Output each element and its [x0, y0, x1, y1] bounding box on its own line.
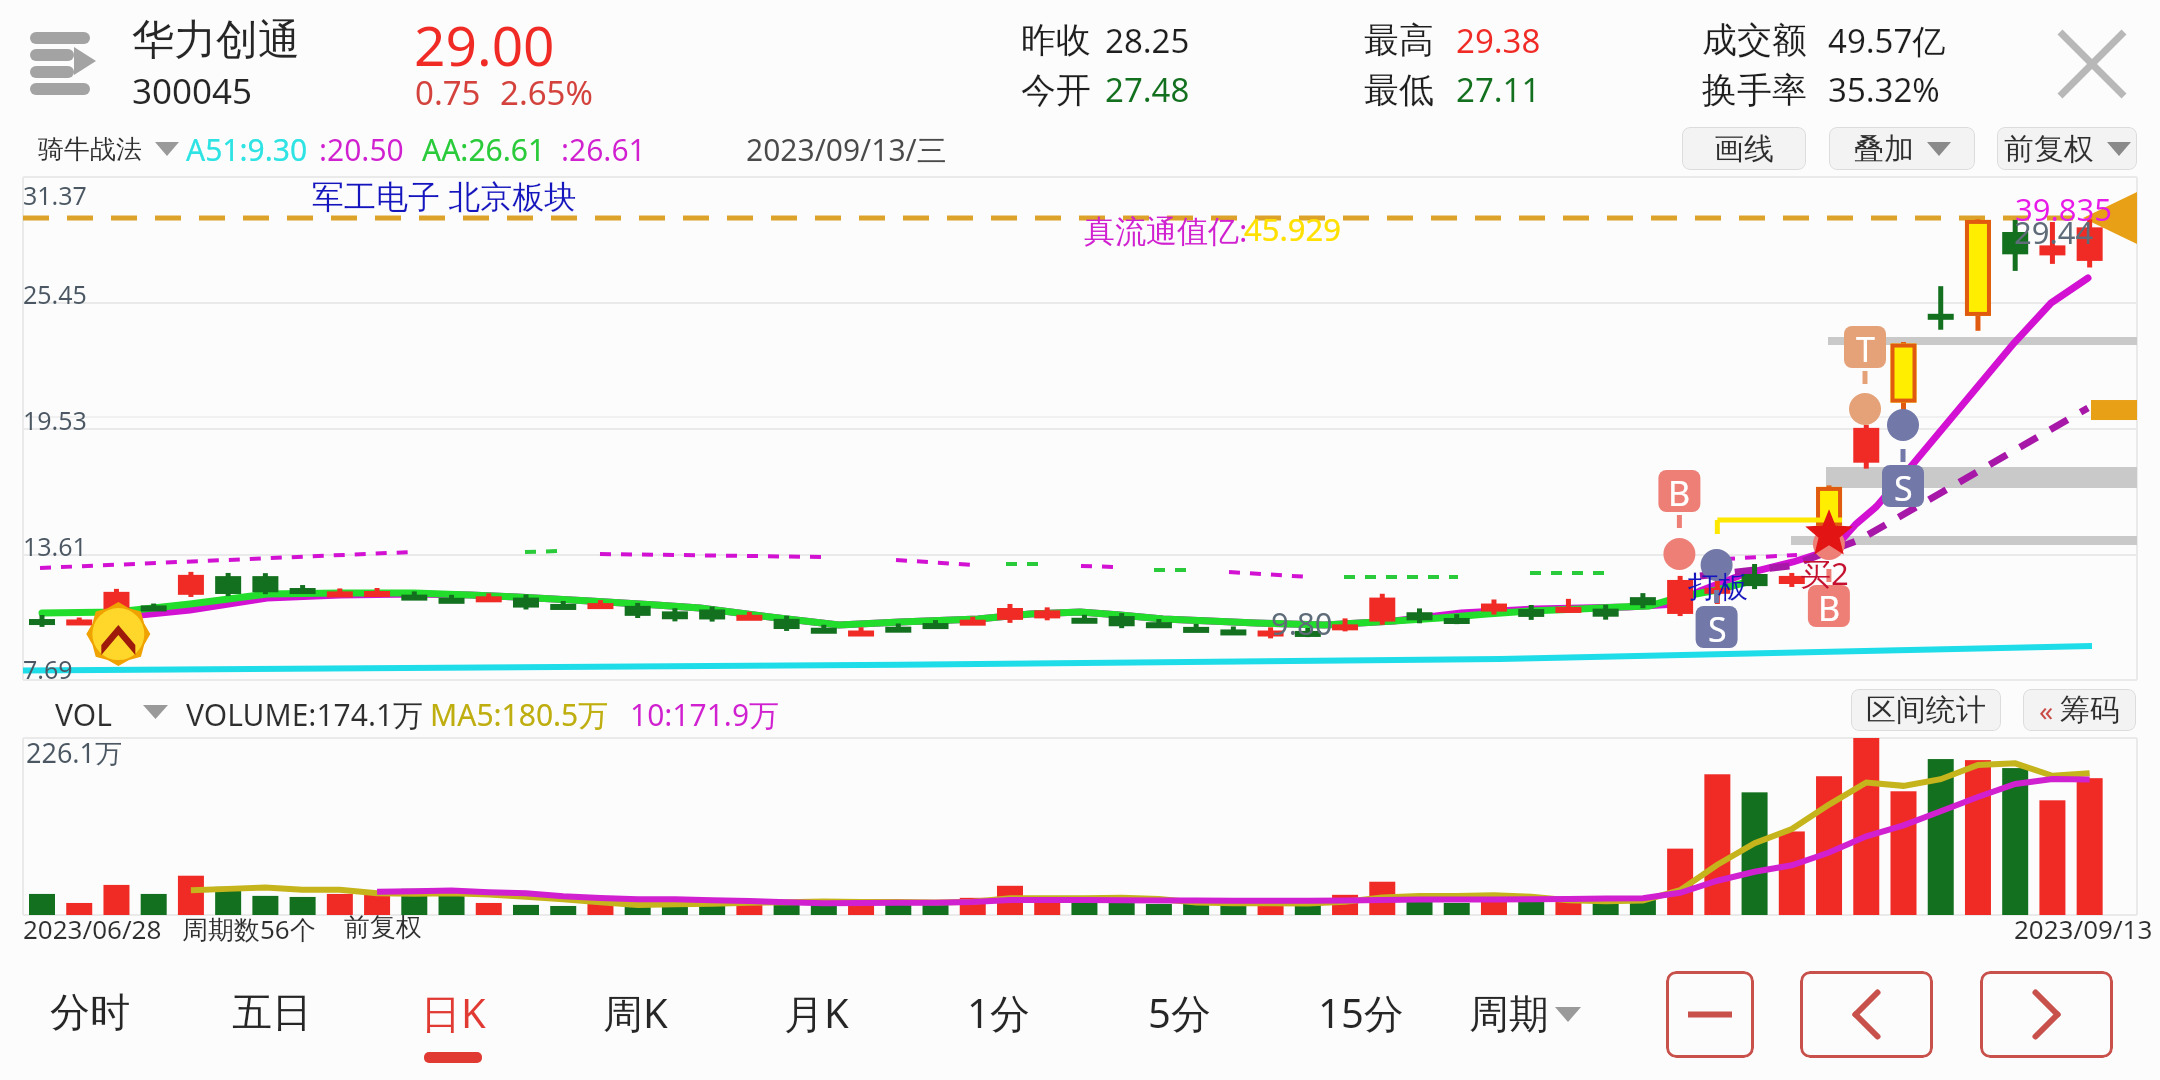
staticText: S — [1708, 606, 1727, 648]
button[interactable]: « — [2023, 689, 2136, 731]
staticText: 300045 — [132, 67, 253, 115]
staticText: 最低 — [1364, 68, 1434, 112]
button[interactable]: 叠加 — [1829, 127, 1975, 170]
button[interactable]: Close — [2052, 24, 2132, 104]
staticText: 19.53 — [23, 403, 87, 437]
button[interactable]: 前复权 — [1997, 127, 2137, 170]
staticText: 日K — [421, 985, 486, 1040]
staticText: 2023/09/13 — [2014, 911, 2153, 946]
button[interactable]: 1分 — [908, 958, 1088, 1066]
staticText: 换手率 — [1702, 68, 1807, 112]
staticText: 军工电子 北京板块 — [312, 174, 577, 218]
staticText: 今开 — [1021, 68, 1091, 112]
staticText: :20.50 — [319, 129, 404, 170]
staticText: 画线 — [1714, 130, 1774, 168]
staticText: 31.37 — [23, 178, 87, 212]
staticText: T — [1856, 326, 1875, 368]
staticText: 成交额 — [1702, 18, 1807, 62]
staticText: 真流通值亿: — [1084, 209, 1248, 251]
staticText: 月K — [784, 985, 849, 1040]
staticText: MA5:180.5万 — [430, 694, 609, 735]
staticText: 45.929 — [1244, 208, 1341, 250]
button[interactable]: VOL — [55, 694, 168, 730]
staticText: 28.25 — [1105, 18, 1190, 63]
staticText: 前复权 — [2004, 130, 2094, 168]
button[interactable]: 周K — [545, 958, 725, 1066]
staticText: AA:26.61 — [422, 129, 546, 170]
staticText: 华力创通 — [132, 14, 300, 67]
staticText: 35.32% — [1828, 67, 1940, 112]
button[interactable]: 15分 — [1271, 958, 1451, 1066]
staticText: 9.80 — [1271, 602, 1333, 644]
button[interactable]: 5分 — [1089, 958, 1269, 1066]
button[interactable]: 日K — [363, 958, 543, 1066]
staticText: VOL — [55, 694, 112, 730]
staticText: 2023/06/28 — [23, 911, 162, 946]
button[interactable]: 分时 — [0, 958, 180, 1066]
staticText: 25.45 — [23, 277, 87, 311]
staticText: 2023/09/13/三 — [746, 129, 947, 170]
button[interactable]: Next — [1980, 971, 2113, 1058]
staticText: 13.61 — [23, 529, 87, 563]
staticText: 2.65% — [500, 70, 593, 115]
staticText: 29.00 — [414, 7, 555, 82]
button[interactable]: 画线 — [1682, 127, 1806, 170]
button[interactable]: Previous — [1800, 971, 1933, 1058]
staticText: 27.11 — [1456, 67, 1541, 112]
staticText: 最高 — [1364, 18, 1434, 62]
button[interactable]: 华力创通 — [132, 14, 300, 115]
button[interactable]: 骑牛战法 — [38, 129, 179, 169]
staticText: 周K — [603, 985, 668, 1040]
staticText: 叠加 — [1854, 130, 1914, 168]
staticText: 周期数56个 — [182, 911, 316, 947]
staticText: 226.1万 — [26, 734, 123, 771]
staticText: 29.44 — [2014, 211, 2094, 253]
staticText: « — [2039, 691, 2054, 729]
staticText: 29.38 — [1456, 18, 1541, 63]
button[interactable]: Zoom out — [1666, 971, 1754, 1058]
staticText: S — [1894, 465, 1913, 507]
button[interactable]: 月K — [726, 958, 906, 1066]
button[interactable]: 周期 — [1452, 962, 1598, 1066]
staticText: A51:9.30 — [186, 129, 308, 170]
staticText: B — [1668, 470, 1691, 512]
staticText: 五日 — [232, 987, 312, 1037]
staticText: 1分 — [967, 985, 1030, 1040]
staticText: :26.61 — [561, 129, 646, 170]
staticText: B — [1818, 585, 1841, 627]
staticText: 打板 — [1688, 568, 1748, 606]
staticText: 分时 — [50, 987, 130, 1037]
staticText: 27.48 — [1105, 67, 1190, 112]
staticText: 15分 — [1318, 985, 1404, 1040]
staticText: 5分 — [1148, 985, 1211, 1040]
staticText: 筹码 — [2060, 691, 2120, 729]
button[interactable]: 五日 — [182, 958, 362, 1066]
staticText: 买2 — [1800, 552, 1849, 594]
staticText: 昨收 — [1021, 18, 1091, 62]
staticText: 49.57亿 — [1828, 18, 1946, 63]
staticText: 前复权 — [344, 911, 422, 944]
staticText: 7.69 — [23, 652, 73, 686]
staticText: 区间统计 — [1866, 691, 1986, 729]
staticText: 周期 — [1469, 989, 1549, 1039]
staticText: 0.75 — [415, 70, 481, 115]
staticText: 10:171.9万 — [630, 694, 780, 735]
button[interactable]: 区间统计 — [1851, 689, 2001, 731]
staticText: 骑牛战法 — [38, 133, 142, 166]
staticText: VOLUME:174.1万 — [186, 694, 424, 735]
button[interactable]: Menu — [22, 22, 102, 102]
staticText: 39.835 — [2015, 188, 2112, 230]
